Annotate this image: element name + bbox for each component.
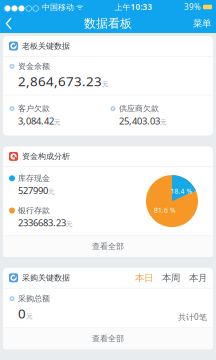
staticText: 银行存款 [18, 206, 50, 215]
staticText: 元 [54, 118, 61, 126]
staticText: ●●●○○ 中国移动 ᯤ [4, 2, 83, 12]
button[interactable]: 查看全部 [3, 236, 213, 257]
staticText: 库存现金 [18, 173, 50, 183]
staticText: 查看全部 [92, 334, 124, 344]
button[interactable]: 返回 [0, 14, 18, 32]
staticText: 2,864,673.23 [18, 72, 102, 90]
staticText: 资金构成分析 [22, 151, 70, 161]
staticText: 采购总额 [18, 294, 50, 303]
staticText: 元 [160, 118, 167, 126]
button[interactable]: 本日 [135, 272, 153, 284]
button[interactable]: 本周 [157, 272, 180, 284]
staticText: 0 [18, 305, 26, 322]
staticText: 老板关键数据 [22, 41, 70, 51]
staticText: 上午10:33 [114, 2, 152, 12]
staticText: 2336683.23 [18, 216, 66, 229]
button[interactable]: 本月 [184, 272, 207, 284]
staticText: 25,403.03 [119, 115, 160, 127]
staticText: 资金余额 [18, 61, 50, 71]
button[interactable]: 菜单 [188, 14, 216, 33]
staticText: 菜单 [193, 18, 211, 29]
staticText: 元 [102, 80, 109, 88]
staticText: 采购关键数据 [22, 273, 70, 283]
button[interactable]: 查看全部 [3, 328, 213, 349]
staticText: 3,084.42 [18, 115, 54, 127]
staticText: 查看全部 [92, 241, 124, 251]
staticText: 本周 [162, 272, 180, 284]
staticText: 本日 [135, 272, 153, 284]
staticText: 共计0笔 [178, 312, 207, 322]
staticText: 供应商欠款 [119, 104, 159, 114]
staticText: 元 [26, 312, 33, 320]
staticText: 18.4 % [170, 187, 192, 196]
staticText: 本月 [189, 272, 207, 284]
staticText: 527990 [18, 184, 48, 197]
staticText: 元 [66, 220, 73, 228]
staticText: 数据看板 [84, 16, 132, 31]
staticText: 39% [184, 2, 201, 12]
staticText: 客户欠款 [18, 104, 50, 114]
staticText: 81.6 % [154, 206, 176, 215]
staticText: 元 [48, 188, 55, 196]
